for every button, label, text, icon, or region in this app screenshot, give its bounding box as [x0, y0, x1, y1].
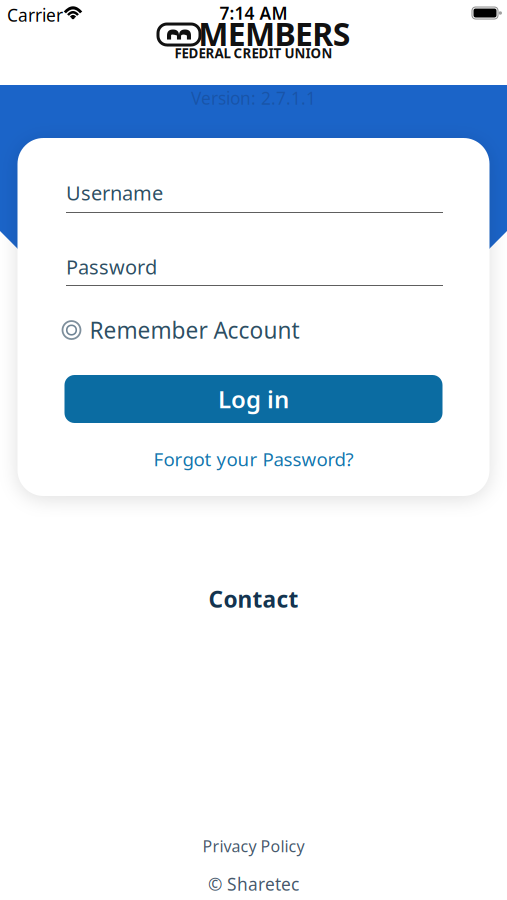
staticText: Forgot your Password?	[153, 447, 353, 471]
staticText: © Sharetec	[208, 872, 299, 895]
staticText: Version: 2.7.1.1	[191, 86, 316, 109]
staticText: Username	[66, 179, 163, 206]
button[interactable]: Remember Account	[62, 315, 299, 345]
button[interactable]: Contact	[208, 584, 298, 614]
staticText: 7:14 AM	[219, 1, 287, 24]
staticText: MEMBERS	[198, 12, 351, 55]
staticText: Carrier	[7, 3, 63, 26]
staticText: Password	[66, 253, 157, 280]
staticText: Contact	[208, 584, 298, 614]
staticText: Remember Account	[89, 315, 299, 345]
staticText: Log in	[218, 383, 289, 415]
button[interactable]: Privacy Policy	[202, 835, 304, 857]
staticText: Privacy Policy	[202, 835, 304, 857]
button[interactable]: Log in	[64, 375, 442, 423]
button[interactable]: Forgot your Password?	[153, 447, 353, 471]
staticText: FEDERAL CREDIT UNION	[174, 44, 332, 62]
